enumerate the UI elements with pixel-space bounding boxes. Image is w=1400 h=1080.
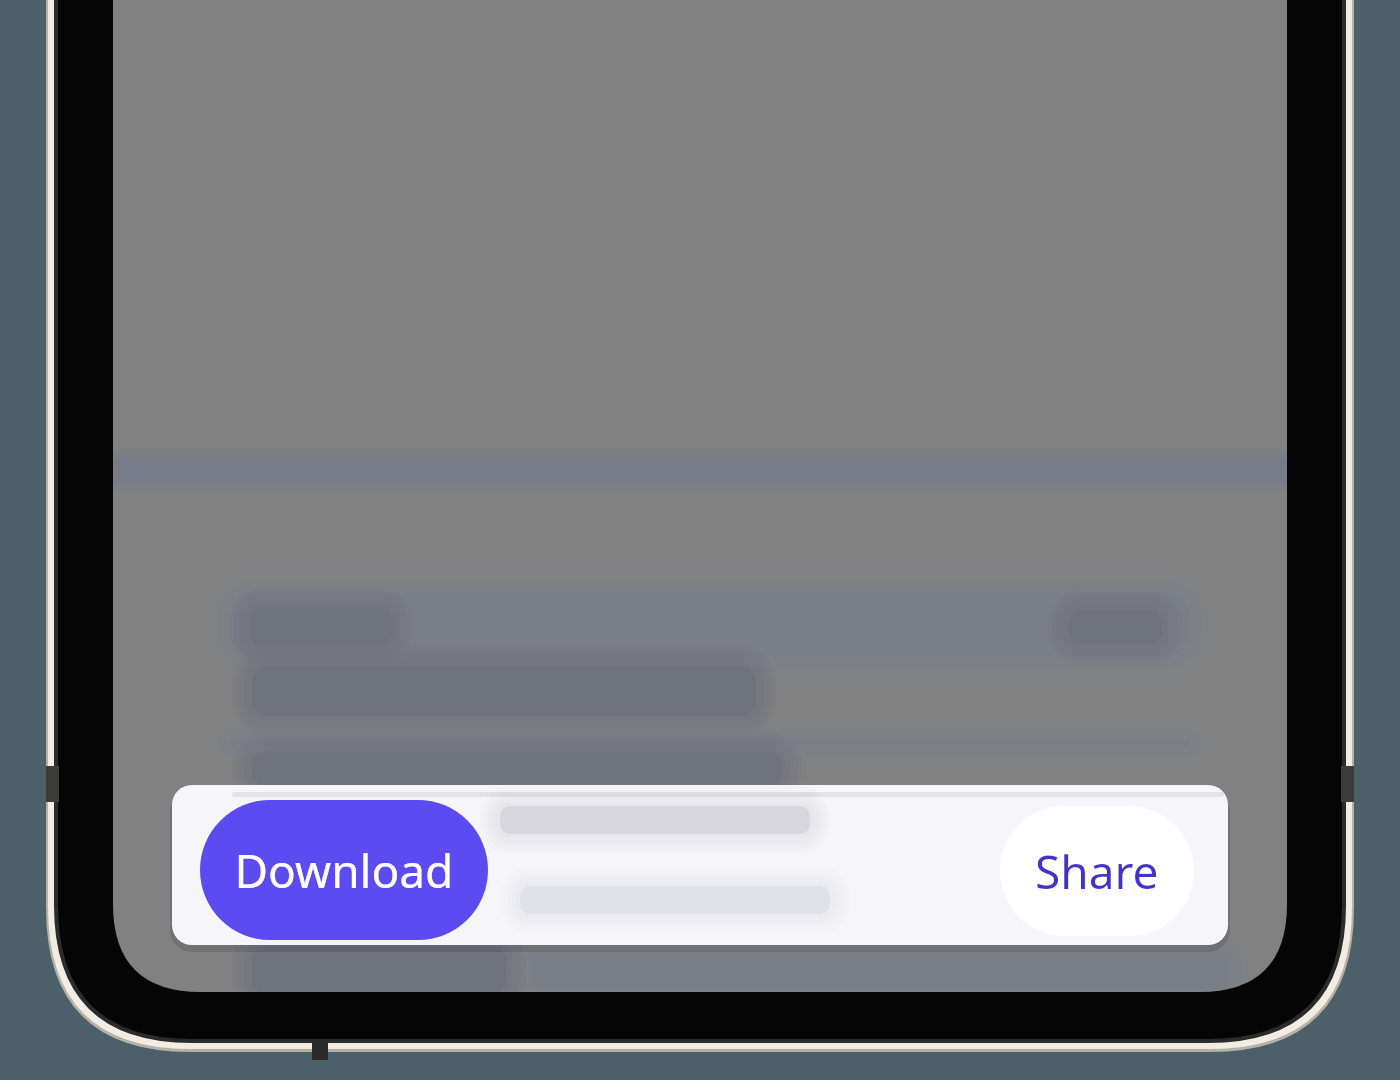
button[interactable]: Share [1000,806,1194,936]
button[interactable]: Download [200,800,488,940]
